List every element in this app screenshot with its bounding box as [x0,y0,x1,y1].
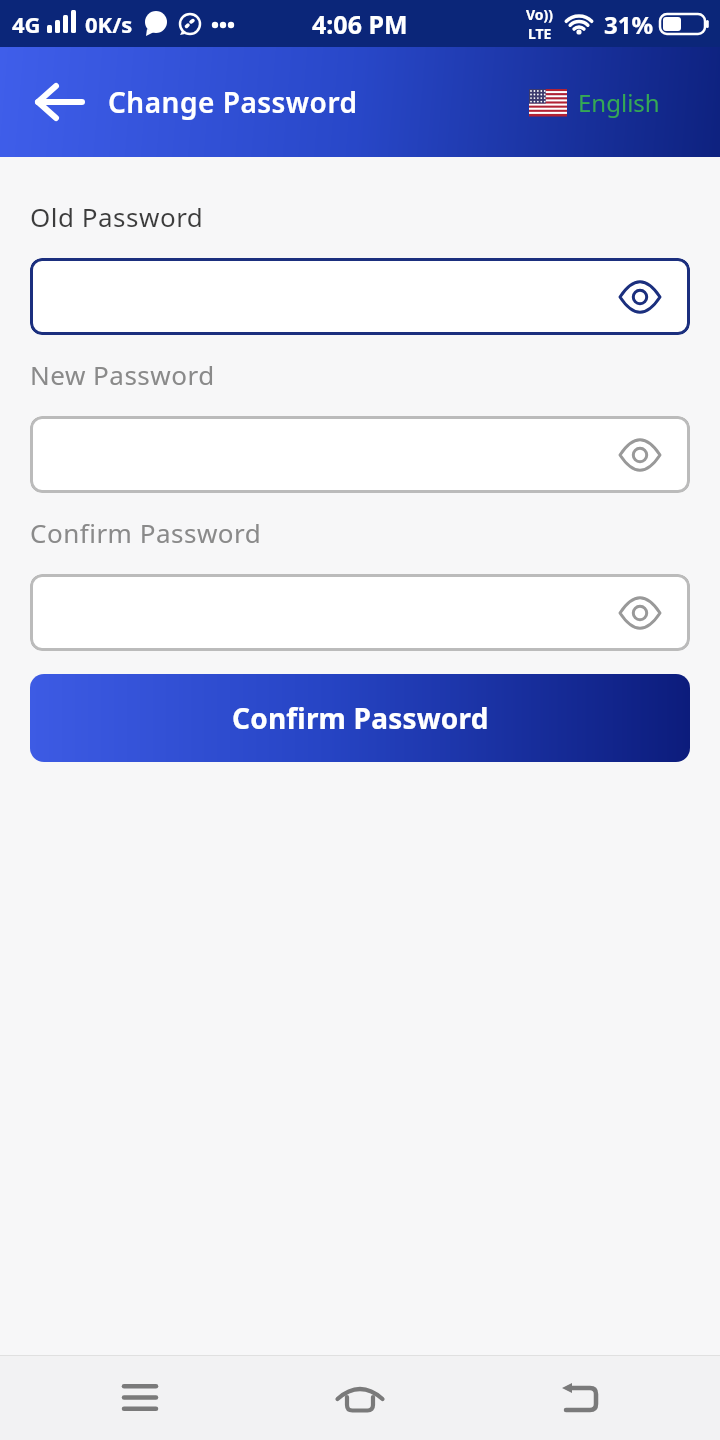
button[interactable] [250,1355,470,1440]
staticText: New Password [30,357,215,392]
staticText: Confirm Password [232,699,489,737]
button[interactable] [30,574,690,651]
button[interactable] [36,85,84,119]
staticText: Confirm Password [30,515,262,550]
button[interactable] [30,1355,250,1440]
staticText: LTE [528,24,552,43]
button[interactable]: Confirm Password [30,674,690,762]
button[interactable] [30,258,690,335]
staticText: 31% [604,8,654,41]
staticText: English [578,86,660,119]
button[interactable] [30,416,690,493]
staticText: Change Password [108,83,358,121]
staticText: 4:06 PM [312,7,408,41]
staticText: Old Password [30,199,204,234]
staticText: Vo)) [526,5,554,24]
staticText: 0K/s [85,9,133,39]
staticText: 4G [12,9,41,39]
button[interactable]: English [529,86,660,119]
button[interactable] [470,1355,690,1440]
